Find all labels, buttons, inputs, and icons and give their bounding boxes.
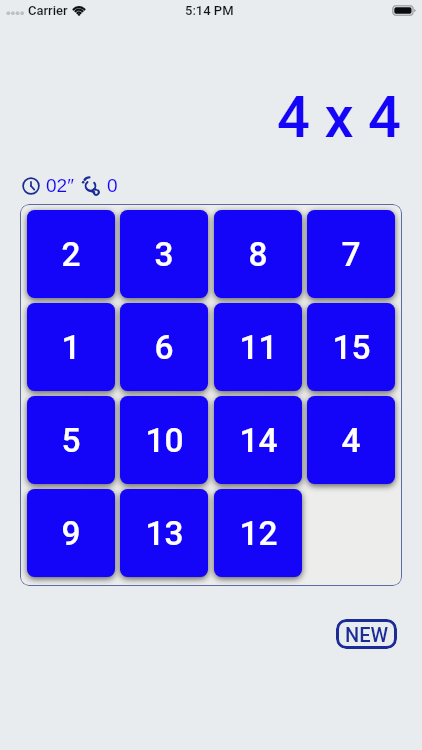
button[interactable]: 9: [27, 489, 115, 577]
staticText: 15: [332, 328, 371, 367]
button[interactable]: 11: [214, 303, 302, 391]
button[interactable]: 5: [27, 396, 115, 484]
staticText: 2: [61, 235, 81, 274]
staticText: 02″: [46, 175, 74, 196]
staticText: 0: [107, 175, 118, 196]
button[interactable]: 6: [120, 303, 208, 391]
staticText: 7: [341, 235, 361, 274]
button[interactable]: 13: [120, 489, 208, 577]
button[interactable]: 12: [214, 489, 302, 577]
staticText: 4: [341, 421, 361, 460]
button[interactable]: 7: [307, 210, 395, 298]
staticText: 6: [154, 328, 174, 367]
button[interactable]: 2: [27, 210, 115, 298]
staticText: 1: [61, 328, 81, 367]
staticText: NEW: [345, 623, 389, 646]
staticText: 14: [239, 421, 278, 460]
button[interactable]: 4: [307, 396, 395, 484]
button[interactable]: 15: [307, 303, 395, 391]
staticText: 9: [61, 514, 81, 553]
staticText: 10: [145, 421, 184, 460]
staticText: 5: [61, 421, 81, 460]
button[interactable]: 3: [120, 210, 208, 298]
button[interactable]: 14: [214, 396, 302, 484]
staticText: 11: [239, 328, 278, 367]
staticText: 12: [239, 514, 278, 553]
staticText: 8: [248, 235, 268, 274]
staticText: 5:14 PM: [185, 3, 234, 18]
staticText: Carrier: [28, 3, 68, 18]
staticText: 4 x 4: [277, 83, 402, 151]
button[interactable]: NEW: [336, 619, 397, 649]
button[interactable]: 1: [27, 303, 115, 391]
staticText: 13: [145, 514, 184, 553]
button[interactable]: 10: [120, 396, 208, 484]
staticText: 3: [154, 235, 174, 274]
button[interactable]: 8: [214, 210, 302, 298]
